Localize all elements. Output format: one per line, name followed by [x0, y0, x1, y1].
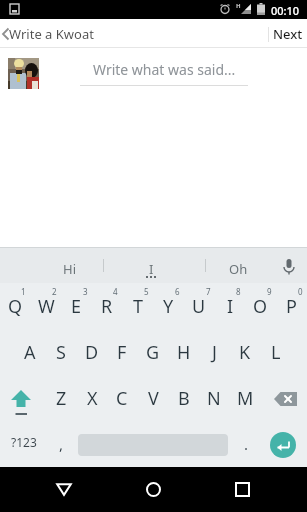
staticText: U	[192, 294, 206, 319]
button[interactable]: .	[231, 421, 261, 467]
staticText: 00:10	[271, 3, 300, 18]
button[interactable]: Z	[46, 375, 76, 421]
button[interactable]: F	[107, 329, 137, 375]
staticText: H	[177, 340, 191, 365]
staticText: 5	[144, 286, 149, 297]
button[interactable]: Next	[273, 19, 307, 48]
staticText: R	[101, 294, 113, 319]
staticText: 4	[113, 286, 118, 297]
button[interactable]	[6, 389, 36, 415]
staticText: Next	[273, 25, 303, 43]
staticText: Y	[163, 294, 174, 319]
button[interactable]: E	[61, 283, 91, 329]
button[interactable]: X	[77, 375, 107, 421]
staticText: J	[212, 340, 217, 365]
button[interactable]: U	[184, 283, 214, 329]
button[interactable]	[270, 432, 296, 458]
button[interactable]: V	[138, 375, 168, 421]
staticText: Write what was said...	[93, 60, 236, 79]
button[interactable]	[274, 392, 297, 406]
button[interactable]: W	[31, 283, 61, 329]
button[interactable]: Q	[0, 283, 30, 329]
staticText: H	[236, 2, 241, 10]
staticText: P	[286, 294, 297, 319]
button[interactable]: A	[15, 329, 45, 375]
button[interactable]	[222, 467, 262, 512]
button[interactable]: Hi	[39, 251, 99, 286]
button[interactable]: H	[169, 329, 199, 375]
staticText: I	[227, 294, 234, 319]
staticText: X	[87, 386, 98, 411]
button[interactable]: I	[121, 251, 181, 286]
button[interactable]: P	[276, 283, 306, 329]
staticText: A	[24, 340, 36, 365]
button[interactable]: I	[215, 283, 245, 329]
staticText: T	[133, 294, 144, 319]
button[interactable]	[44, 467, 84, 512]
button[interactable]: G	[138, 329, 168, 375]
staticText: 7	[206, 286, 211, 297]
staticText: Oh	[229, 260, 248, 278]
button[interactable]: S	[46, 329, 76, 375]
staticText: 2	[52, 286, 57, 297]
button[interactable]: ,	[46, 421, 76, 467]
button[interactable]: Write a Kwoat	[0, 19, 94, 48]
button[interactable]: N	[199, 375, 229, 421]
staticText: F	[117, 340, 127, 365]
staticText: S	[56, 340, 66, 365]
staticText: K	[239, 340, 251, 365]
button[interactable]: D	[77, 329, 107, 375]
button[interactable]: M	[230, 375, 260, 421]
button[interactable]: B	[169, 375, 199, 421]
staticText: 9	[267, 286, 272, 297]
staticText: O	[253, 294, 268, 319]
staticText: N	[207, 386, 221, 411]
button[interactable]: L	[261, 329, 291, 375]
staticText: 3	[83, 286, 88, 297]
staticText: ,	[59, 434, 64, 454]
button[interactable]: ?123	[3, 427, 45, 457]
staticText: D	[85, 340, 99, 365]
staticText: I	[149, 260, 154, 278]
staticText: L	[271, 340, 281, 365]
button[interactable]	[283, 259, 295, 276]
staticText: 6	[175, 286, 180, 297]
button[interactable]: Write what was said...	[80, 58, 248, 86]
button[interactable]: J	[199, 329, 229, 375]
staticText: .	[244, 434, 249, 454]
staticText: ?123	[11, 434, 37, 450]
button[interactable]	[133, 467, 173, 512]
staticText: Q	[8, 294, 23, 319]
button[interactable]: R	[92, 283, 122, 329]
button[interactable]: O	[245, 283, 275, 329]
staticText: G	[146, 340, 160, 365]
staticText: B	[178, 386, 190, 411]
button[interactable]: Oh	[208, 251, 268, 286]
staticText: E	[71, 294, 82, 319]
staticText: Write a Kwoat	[9, 25, 94, 43]
button[interactable]: K	[230, 329, 260, 375]
staticText: M	[237, 386, 254, 411]
staticText: W	[38, 294, 55, 319]
staticText: C	[116, 386, 128, 411]
button[interactable]: C	[107, 375, 137, 421]
button[interactable]: Y	[153, 283, 183, 329]
staticText: 8	[236, 286, 241, 297]
staticText: 0	[298, 286, 303, 297]
staticText: V	[148, 386, 159, 411]
staticText: 1	[21, 286, 26, 297]
staticText: Z	[56, 386, 67, 411]
button[interactable]: T	[123, 283, 153, 329]
staticText: Hi	[63, 260, 76, 278]
